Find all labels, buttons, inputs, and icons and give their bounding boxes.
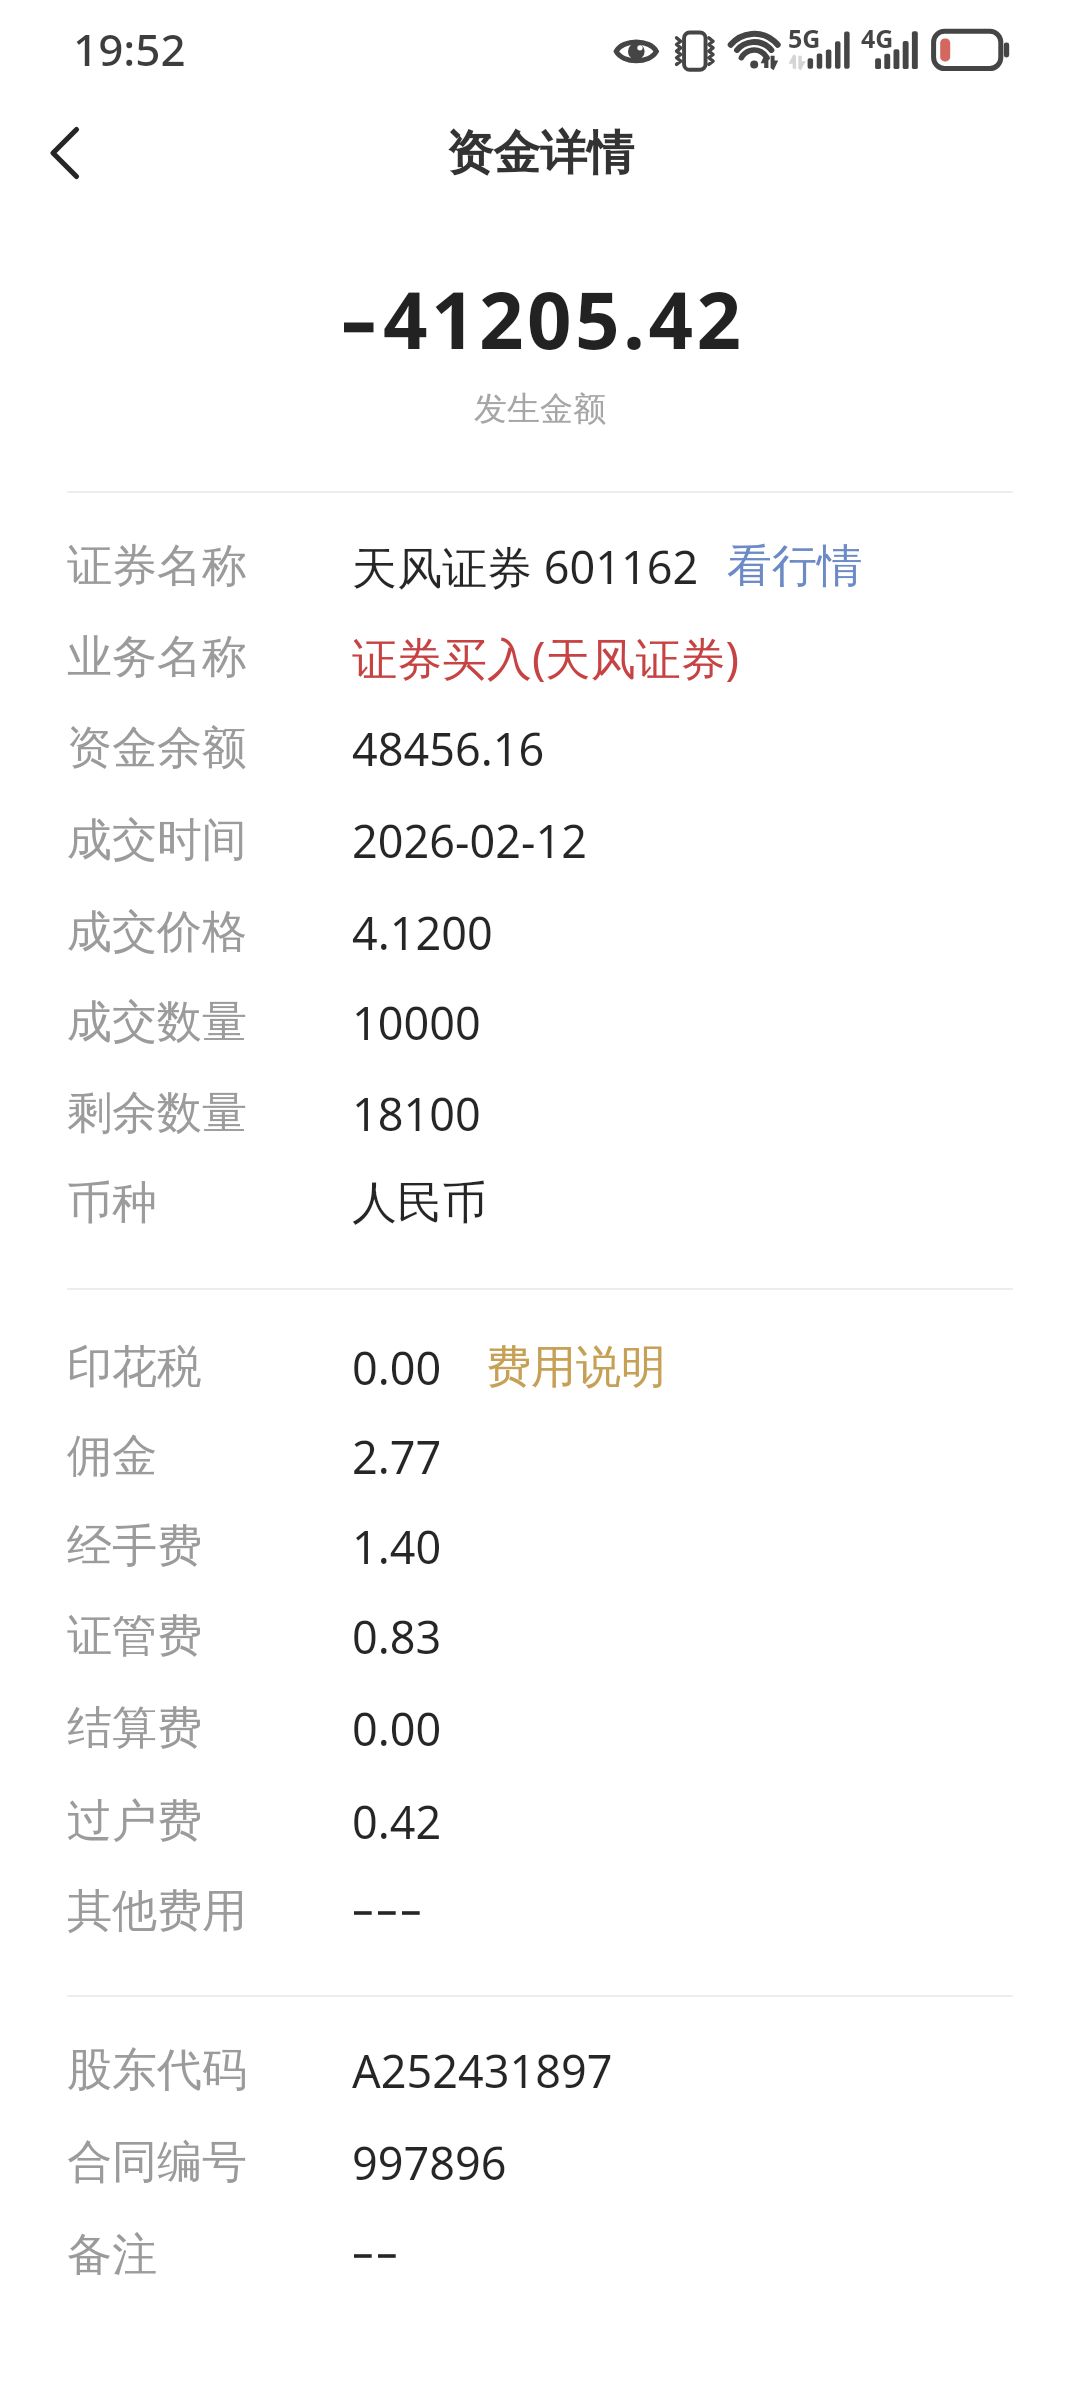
staticText: 18100 [352, 1083, 481, 1144]
staticText: 成交时间 [67, 812, 247, 869]
button[interactable]: 过户费 [0, 1776, 1080, 1866]
staticText: 4.1200 [352, 902, 493, 963]
button[interactable]: 备注 [0, 2209, 1080, 2301]
staticText: 看行情 [727, 538, 862, 595]
button[interactable]: 币种 [0, 1159, 1080, 1247]
staticText: 股东代码 [67, 2042, 247, 2099]
staticText: 0.00 [352, 1337, 442, 1398]
staticText: 证券名称 [67, 538, 247, 595]
staticText: 人民币 [352, 1175, 487, 1232]
staticText: 经手费 [67, 1518, 202, 1575]
staticText: 2.77 [352, 1426, 442, 1487]
button[interactable]: 佣金 [0, 1412, 1080, 1501]
button[interactable]: 业务名称 [0, 611, 1080, 703]
staticText: 佣金 [67, 1428, 157, 1485]
staticText: 业务名称 [67, 629, 247, 686]
button[interactable]: 其他费用 [0, 1866, 1080, 1957]
staticText: 成交数量 [67, 994, 247, 1051]
staticText: 备注 [67, 2227, 157, 2284]
button[interactable]: 成交数量 [0, 978, 1080, 1067]
button[interactable]: 经手费 [0, 1501, 1080, 1591]
staticText: 4G [861, 21, 894, 55]
staticText: 0.83 [352, 1606, 442, 1667]
staticText: 41205.42 [383, 266, 745, 372]
staticText: 印花税 [67, 1339, 202, 1396]
staticText: 1.40 [352, 1516, 442, 1577]
staticText: 证管费 [67, 1608, 202, 1665]
button[interactable]: 成交时间 [0, 794, 1080, 886]
staticText: 费用说明 [486, 1339, 666, 1396]
button[interactable]: 印花税 [0, 1322, 1080, 1412]
button[interactable]: 资金余额 [0, 703, 1080, 794]
staticText: 48456.16 [352, 718, 545, 779]
staticText: 币种 [67, 1175, 157, 1232]
button[interactable]: 合同编号 [0, 2116, 1080, 2209]
staticText: 0.42 [352, 1791, 442, 1852]
button[interactable]: 成交价格 [0, 886, 1080, 978]
button[interactable]: 证管费 [0, 1591, 1080, 1681]
staticText: 资金详情 [446, 124, 634, 183]
staticText: 证券买入(天风证券) [352, 627, 740, 688]
button[interactable]: Back [14, 100, 114, 206]
button[interactable]: 股东代码 [0, 2024, 1080, 2116]
button[interactable]: 证券名称 [0, 521, 1080, 611]
button[interactable]: 费用说明 [472, 1322, 680, 1412]
button[interactable]: 看行情 [713, 521, 876, 611]
staticText: 天风证券 601162 [352, 536, 699, 597]
button[interactable]: 结算费 [0, 1681, 1080, 1776]
staticText: 19:52 [73, 19, 186, 79]
staticText: 发生金额 [0, 388, 1080, 430]
staticText: 过户费 [67, 1793, 202, 1850]
button[interactable]: 剩余数量 [0, 1067, 1080, 1159]
staticText: 2026-02-12 [352, 810, 587, 871]
staticText: 剩余数量 [67, 1085, 247, 1142]
staticText: 0.00 [352, 1698, 442, 1759]
staticText: 5G [788, 21, 821, 55]
staticText: 资金余额 [67, 720, 247, 777]
staticText: 10000 [352, 992, 481, 1053]
staticText: A252431897 [352, 2040, 613, 2101]
staticText: 结算费 [67, 1700, 202, 1757]
staticText: 成交价格 [67, 904, 247, 961]
staticText: 997896 [352, 2132, 507, 2193]
staticText: 合同编号 [67, 2134, 247, 2191]
staticText: 其他费用 [67, 1883, 247, 1940]
